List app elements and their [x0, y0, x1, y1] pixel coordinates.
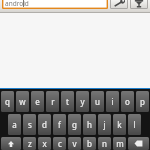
staticText: z: [28, 138, 32, 149]
button[interactable]: g: [68, 114, 81, 135]
button[interactable]: w: [16, 91, 29, 112]
staticText: t: [66, 96, 69, 107]
staticText: h: [87, 119, 92, 130]
staticText: b: [87, 138, 92, 149]
button[interactable]: Shift: [1, 137, 21, 150]
staticText: q: [5, 96, 10, 107]
staticText: l: [133, 119, 136, 130]
button[interactable]: e: [31, 91, 44, 112]
staticText: e: [35, 96, 40, 107]
button[interactable]: Search settings: [110, 0, 128, 9]
button[interactable]: u: [91, 91, 104, 112]
button[interactable]: i: [106, 91, 119, 112]
button[interactable]: s: [23, 114, 36, 135]
staticText: o: [125, 96, 130, 107]
button[interactable]: Filter results: [130, 0, 148, 9]
button[interactable]: q: [1, 91, 14, 112]
button[interactable]: o: [121, 91, 134, 112]
staticText: p: [140, 96, 145, 107]
staticText: r: [51, 96, 55, 107]
staticText: android: [5, 0, 29, 8]
staticText: i: [111, 96, 114, 107]
staticText: a: [12, 119, 17, 130]
button[interactable]: l: [128, 114, 141, 135]
button[interactable]: j: [98, 114, 111, 135]
staticText: s: [28, 119, 32, 130]
button[interactable]: p: [136, 91, 149, 112]
button[interactable]: y: [76, 91, 89, 112]
staticText: m: [116, 138, 124, 149]
button[interactable]: n: [98, 137, 111, 150]
button[interactable]: Backspace: [128, 137, 149, 150]
staticText: u: [95, 96, 100, 107]
staticText: j: [103, 119, 106, 130]
button[interactable]: a: [8, 114, 21, 135]
button[interactable]: x: [38, 137, 51, 150]
staticText: f: [58, 119, 61, 130]
button[interactable]: v: [68, 137, 81, 150]
button[interactable]: c: [53, 137, 66, 150]
button[interactable]: android: [2, 0, 108, 9]
staticText: w: [19, 96, 26, 107]
staticText: y: [80, 96, 85, 107]
staticText: n: [102, 138, 107, 149]
button[interactable]: d: [38, 114, 51, 135]
staticText: d: [42, 119, 47, 130]
button[interactable]: r: [46, 91, 59, 112]
staticText: g: [72, 119, 77, 130]
button[interactable]: f: [53, 114, 66, 135]
button[interactable]: k: [113, 114, 126, 135]
staticText: c: [58, 138, 62, 149]
button[interactable]: t: [61, 91, 74, 112]
button[interactable]: b: [83, 137, 96, 150]
button[interactable]: z: [23, 137, 36, 150]
staticText: k: [117, 119, 122, 130]
button[interactable]: m: [113, 137, 126, 150]
staticText: x: [42, 138, 47, 149]
staticText: v: [72, 138, 77, 149]
button[interactable]: h: [83, 114, 96, 135]
